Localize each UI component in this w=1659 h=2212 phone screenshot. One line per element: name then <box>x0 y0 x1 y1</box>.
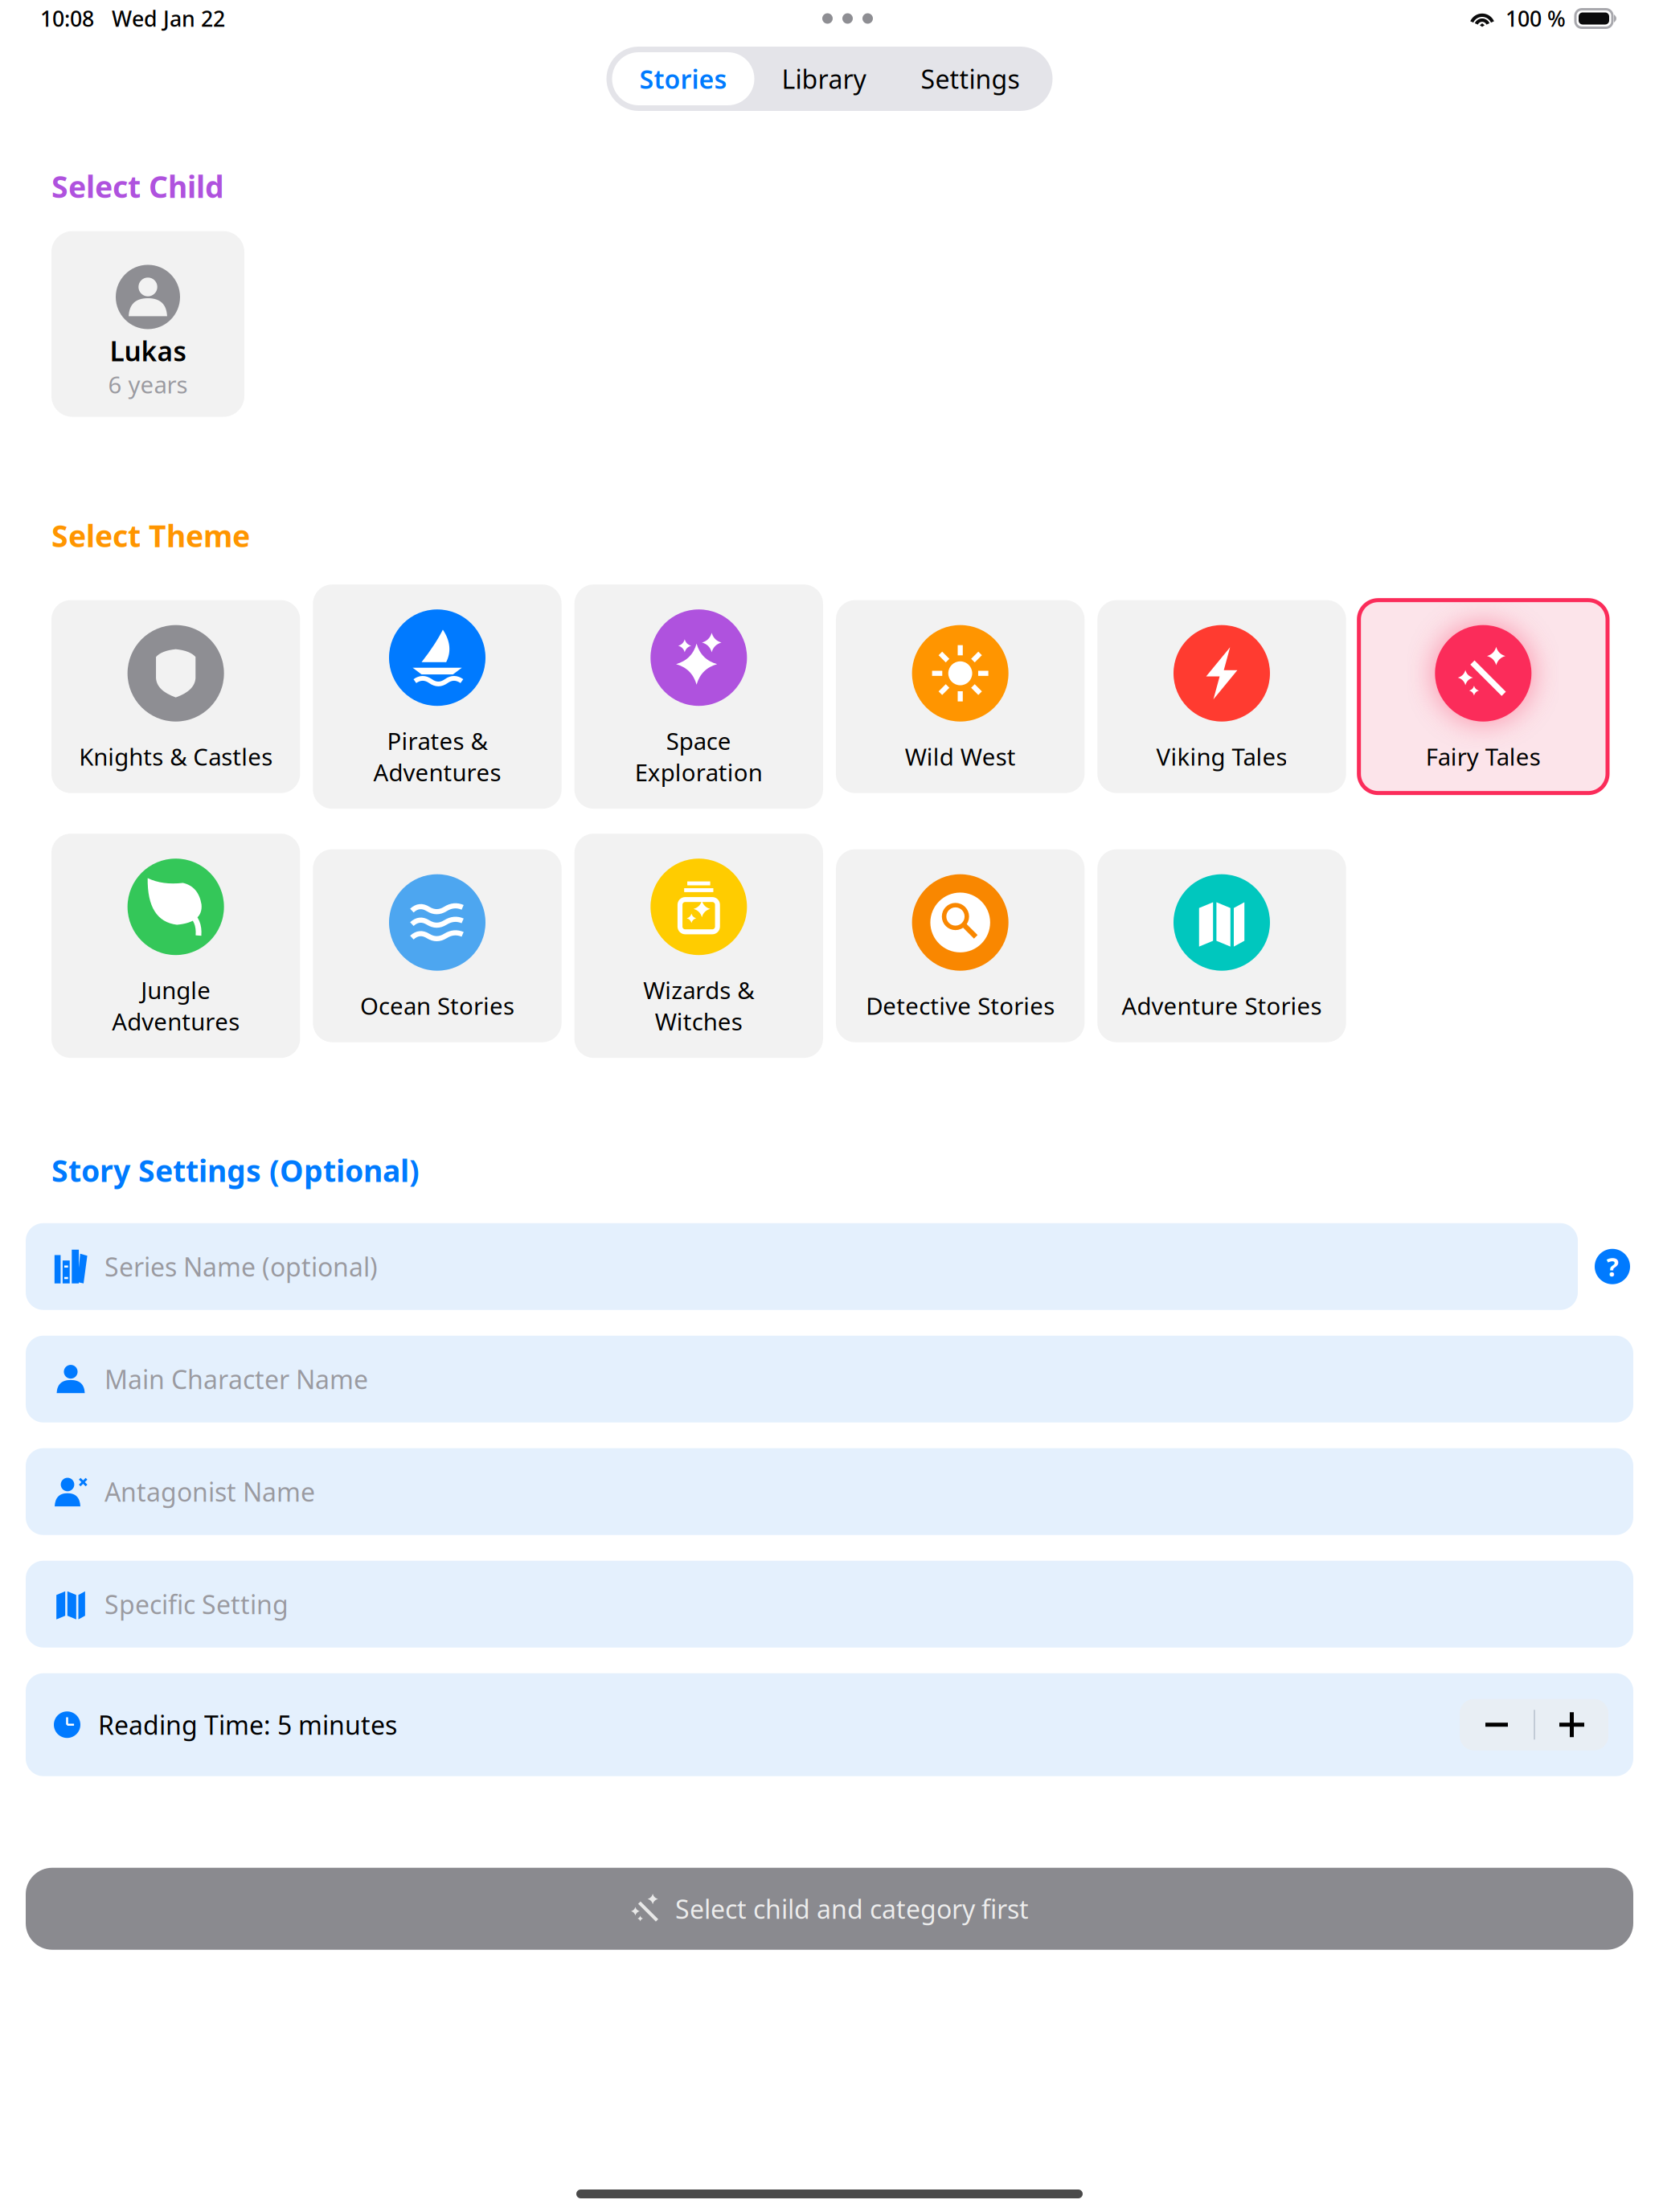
staticText: Space <box>666 725 731 757</box>
staticText: Wizards & <box>643 974 754 1006</box>
button[interactable]: Wizards & <box>574 834 823 1058</box>
staticText: Adventures <box>373 757 501 788</box>
button[interactable]: Jungle <box>51 834 300 1058</box>
button[interactable]: Specific Setting <box>26 1561 1633 1648</box>
staticText: Exploration <box>635 757 763 788</box>
staticText: Ocean Stories <box>360 990 514 1021</box>
button[interactable]: Detective Stories <box>836 849 1085 1042</box>
staticText: Story Settings (Optional) <box>51 1150 420 1190</box>
button[interactable]: Fairy Tales <box>1359 600 1607 793</box>
staticText: Viking Tales <box>1156 741 1287 772</box>
staticText: Stories <box>639 62 727 96</box>
button[interactable]: Pirates & <box>313 585 562 809</box>
button[interactable]: Library <box>754 52 893 105</box>
staticText: 100 % <box>1505 4 1566 33</box>
button[interactable]: Stories <box>612 52 754 105</box>
staticText: Select Child <box>51 166 224 206</box>
button[interactable]: Increase reading time <box>1535 1699 1608 1750</box>
button[interactable]: Viking Tales <box>1097 600 1346 793</box>
button[interactable]: Settings <box>893 52 1047 105</box>
staticText: Knights & Castles <box>79 741 273 772</box>
staticText: Specific Setting <box>104 1587 289 1621</box>
staticText: Pirates & <box>387 725 487 757</box>
button[interactable]: Series Name (optional) <box>26 1223 1578 1310</box>
staticText: Antagonist Name <box>104 1475 315 1509</box>
staticText: Select child and category first <box>675 1892 1029 1926</box>
button[interactable]: Knights & Castles <box>51 600 300 793</box>
button[interactable]: Space <box>574 585 823 809</box>
staticText: 10:08 <box>40 4 94 33</box>
button[interactable]: Lukas <box>51 231 244 417</box>
staticText: Select Theme <box>51 516 250 556</box>
staticText: Fairy Tales <box>1426 741 1541 772</box>
staticText: Jungle <box>141 974 211 1006</box>
button[interactable]: Main Character Name <box>26 1336 1633 1422</box>
staticText: Lukas <box>110 333 186 369</box>
staticText: Reading Time: 5 minutes <box>98 1708 397 1742</box>
staticText: 6 years <box>108 369 188 400</box>
staticText: Witches <box>655 1006 743 1037</box>
button[interactable]: Ocean Stories <box>313 849 562 1042</box>
button[interactable]: Help <box>1595 1249 1630 1284</box>
button[interactable]: Decrease reading time <box>1460 1699 1534 1750</box>
staticText: Wild West <box>905 741 1016 772</box>
button[interactable]: Antagonist Name <box>26 1448 1633 1535</box>
staticText: ? <box>1606 1249 1618 1284</box>
button[interactable]: Wild West <box>836 600 1085 793</box>
staticText: Detective Stories <box>866 990 1055 1021</box>
staticText: Library <box>782 62 866 96</box>
staticText: Main Character Name <box>104 1362 368 1396</box>
staticText: Adventure Stories <box>1122 990 1322 1021</box>
staticText: Series Name (optional) <box>104 1249 378 1284</box>
button[interactable]: Select child and category first <box>26 1868 1633 1950</box>
button[interactable]: Adventure Stories <box>1097 849 1346 1042</box>
staticText: Adventures <box>112 1006 240 1037</box>
staticText: Wed Jan 22 <box>112 4 225 33</box>
staticText: Settings <box>921 62 1020 96</box>
